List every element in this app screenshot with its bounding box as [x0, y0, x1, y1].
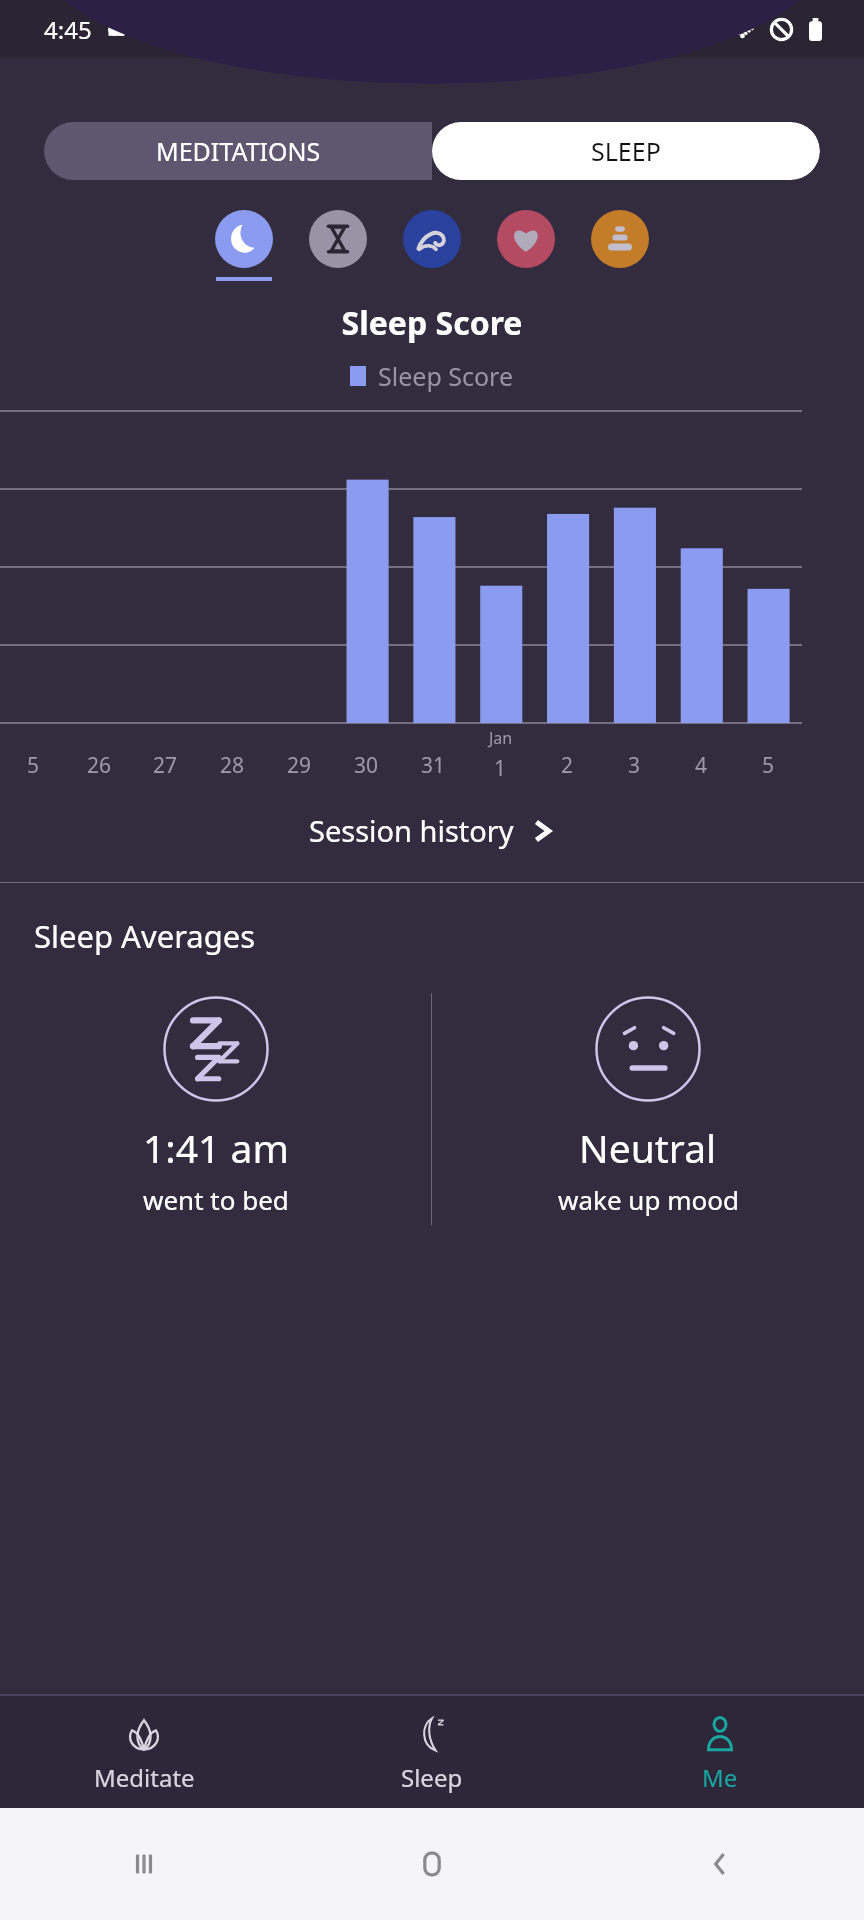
button[interactable]: Sleep score [215, 210, 273, 268]
staticText: Neutral [579, 1121, 717, 1174]
button[interactable]: MEDITATIONS [44, 122, 432, 180]
staticText: Session history [309, 811, 514, 850]
staticText: wake up mood [558, 1182, 739, 1217]
button[interactable]: Duration [309, 210, 367, 268]
staticText: Sleep Score [0, 301, 864, 345]
button[interactable]: Me [576, 1696, 864, 1808]
staticText: went to bed [143, 1182, 289, 1217]
staticText: 1 [494, 754, 507, 783]
staticText: Sleep Score [378, 359, 514, 393]
button[interactable]: Session history [0, 801, 864, 860]
button[interactable]: Sounds [403, 210, 461, 268]
staticText: Jan [489, 727, 513, 749]
staticText: Sleep Averages [34, 915, 256, 957]
staticText: 31 [421, 751, 446, 780]
staticText: 26 [87, 751, 112, 780]
staticText: 4 [695, 751, 708, 780]
button[interactable]: Home [288, 1808, 576, 1920]
button[interactable]: Mindfulness [591, 210, 649, 268]
staticText: 5 [762, 751, 775, 780]
button[interactable]: Meditate [0, 1696, 288, 1808]
staticText: Sleep [401, 1761, 463, 1794]
button[interactable]: Back [576, 1808, 864, 1920]
staticText: 28 [220, 751, 245, 780]
button[interactable]: SLEEP [432, 122, 820, 180]
staticText: 3 [628, 751, 641, 780]
staticText: 30 [354, 751, 379, 780]
staticText: 5 [27, 751, 40, 780]
staticText: 4:45 [44, 13, 92, 46]
staticText: SLEEP [591, 134, 661, 168]
staticText: 29 [287, 751, 312, 780]
staticText: Meditate [94, 1761, 195, 1794]
staticText: MEDITATIONS [156, 134, 321, 168]
button[interactable]: Recent apps [0, 1808, 288, 1920]
button[interactable]: Sleep [288, 1696, 576, 1808]
button[interactable]: Mood [497, 210, 555, 268]
staticText: Me [702, 1761, 738, 1794]
staticText: 27 [153, 751, 178, 780]
staticText: 1:41 am [143, 1121, 289, 1174]
staticText: 2 [561, 751, 574, 780]
